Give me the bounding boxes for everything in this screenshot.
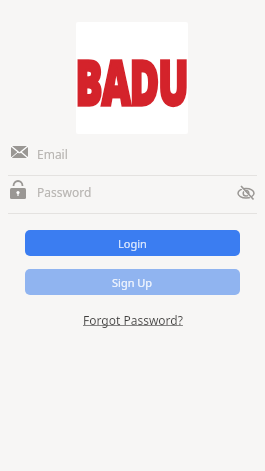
staticText: Sign Up (112, 275, 153, 290)
staticText: Login (118, 236, 147, 251)
button[interactable]: Forgot Password? (0, 312, 265, 328)
staticText: BADU (76, 38, 188, 124)
button[interactable]: Login (25, 230, 240, 256)
button[interactable]: Sign Up (25, 269, 240, 295)
staticText: Password (37, 184, 92, 200)
staticText: Forgot Password? (83, 312, 183, 328)
staticText: Email (37, 146, 68, 162)
staticText: BADU (76, 38, 188, 124)
button[interactable] (238, 186, 254, 201)
